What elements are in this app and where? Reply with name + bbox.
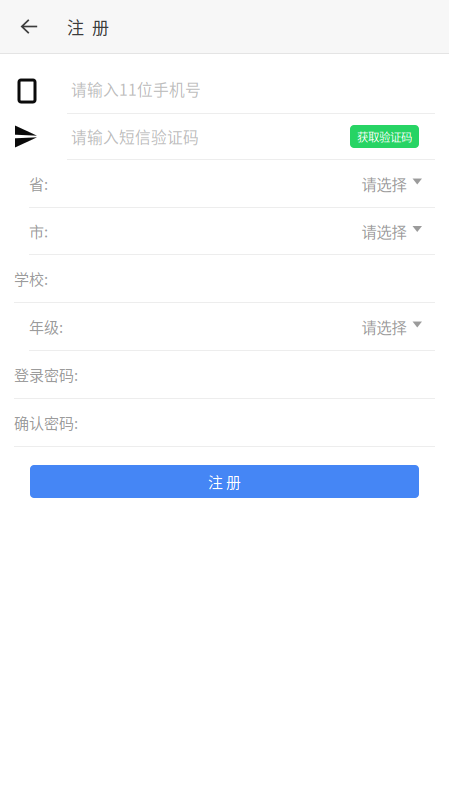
staticText: 获取验证码 [357, 128, 412, 145]
button[interactable]: 学校: [0, 255, 449, 302]
button[interactable]: 省: [0, 160, 449, 207]
button[interactable]: 年级: [0, 303, 449, 350]
staticText: 注 册 [208, 471, 241, 492]
staticText: 学校: [14, 268, 48, 289]
button[interactable]: 获取验证码 [350, 125, 419, 148]
staticText: 请选择 [361, 315, 406, 338]
staticText: 市: [29, 220, 48, 242]
staticText: 登录密码: [14, 364, 78, 385]
button[interactable]: 注 册 [30, 465, 419, 498]
staticText: 确认密码: [14, 412, 78, 433]
staticText: 年级: [29, 316, 63, 337]
staticText: 请选择 [361, 220, 406, 242]
staticText: 请输入短信验证码 [71, 125, 199, 148]
staticText: 注 册 [67, 14, 109, 39]
staticText: 请选择 [361, 172, 406, 195]
button[interactable]: 登录密码: [0, 351, 449, 398]
button[interactable]: 市: [0, 208, 449, 254]
staticText: 请输入11位手机号 [71, 78, 201, 100]
button[interactable]: 确认密码: [0, 399, 449, 446]
staticText: 省: [29, 173, 48, 194]
button[interactable]: Back [0, 0, 67, 53]
